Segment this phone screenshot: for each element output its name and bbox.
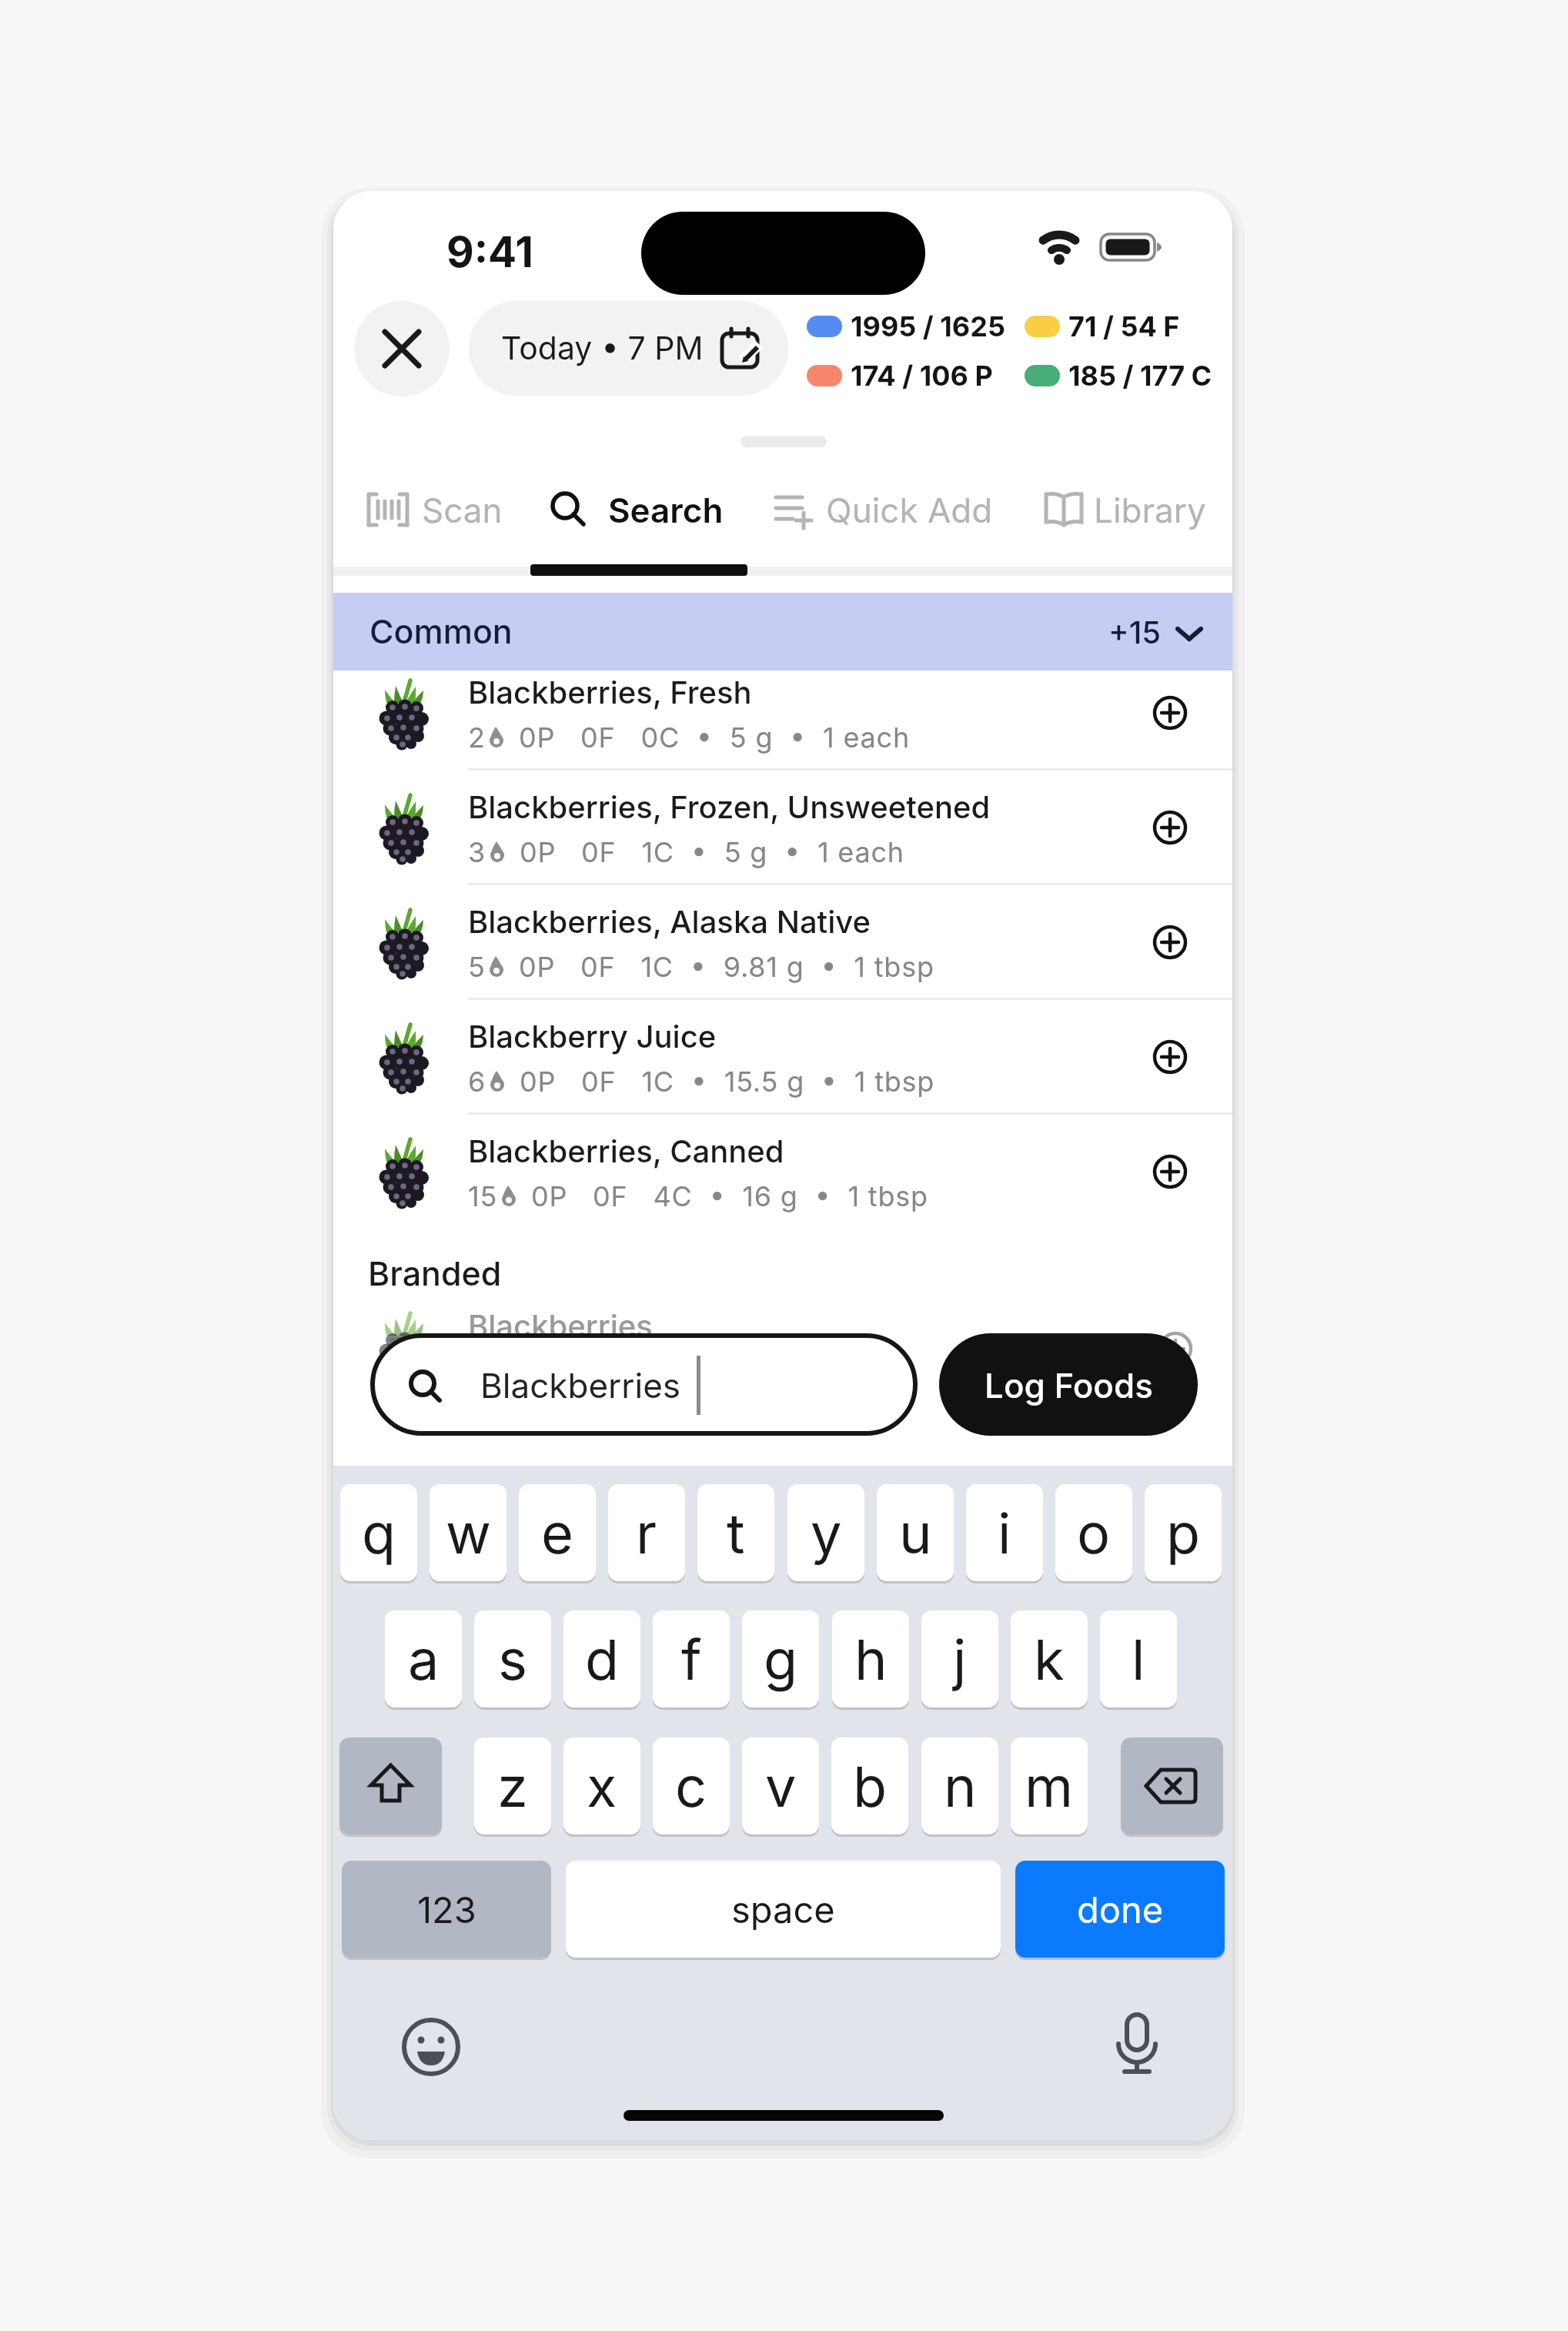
button[interactable]: a xyxy=(385,1610,462,1707)
button[interactable] xyxy=(333,1129,1232,1244)
button[interactable]: g xyxy=(742,1610,819,1707)
staticText: Blackberries, Canned xyxy=(468,1132,784,1169)
button[interactable] xyxy=(469,301,788,396)
button[interactable]: i xyxy=(966,1484,1043,1581)
staticText: h xyxy=(854,1626,888,1693)
staticText: f xyxy=(681,1626,702,1693)
staticText: Blackberry Juice xyxy=(468,1018,717,1055)
button[interactable]: 123 xyxy=(342,1861,551,1958)
staticText: z xyxy=(497,1753,528,1820)
staticText: Blackberries, Fresh xyxy=(468,674,752,711)
staticText: p xyxy=(1166,1500,1201,1567)
button[interactable] xyxy=(333,593,1232,671)
button[interactable] xyxy=(333,1015,1232,1129)
staticText: 15 xyxy=(468,1179,498,1213)
button[interactable]: k xyxy=(1011,1610,1088,1707)
button[interactable]: done xyxy=(1015,1861,1225,1958)
staticText: done xyxy=(1077,1888,1164,1931)
button[interactable]: c xyxy=(653,1737,730,1834)
staticText: 6 xyxy=(468,1065,486,1099)
staticText: Library xyxy=(1094,490,1206,530)
button[interactable] xyxy=(1150,1037,1190,1077)
button[interactable]: p xyxy=(1145,1484,1222,1581)
button[interactable] xyxy=(1150,922,1190,962)
button[interactable]: t xyxy=(697,1484,774,1581)
button[interactable] xyxy=(1150,808,1190,848)
staticText: 3 xyxy=(468,835,486,869)
button[interactable] xyxy=(541,476,734,545)
button[interactable]: z xyxy=(474,1737,551,1834)
staticText: 174 / 106 P xyxy=(851,359,993,393)
staticText: k xyxy=(1034,1626,1065,1693)
button[interactable] xyxy=(764,476,995,545)
button[interactable]: m xyxy=(1011,1737,1088,1834)
staticText: 185 / 177 C xyxy=(1068,359,1212,393)
button[interactable]: s xyxy=(474,1610,551,1707)
staticText: 1995 / 1625 xyxy=(851,309,1005,343)
staticText: m xyxy=(1025,1753,1074,1820)
staticText: v xyxy=(765,1753,797,1820)
staticText: 0P 0F 1C • 5 g • 1 each xyxy=(520,835,904,869)
staticText: space xyxy=(731,1888,835,1931)
staticText: 0P 0F 0C • 5 g • 1 each xyxy=(519,721,910,754)
button[interactable]: v xyxy=(742,1737,819,1834)
staticText: q xyxy=(362,1500,396,1567)
staticText: 71 / 54 F xyxy=(1068,309,1180,343)
staticText: l xyxy=(1132,1626,1145,1693)
button[interactable]: o xyxy=(1055,1484,1132,1581)
staticText: 9:41 xyxy=(446,226,533,278)
button[interactable]: j xyxy=(921,1610,998,1707)
staticText: Scan xyxy=(422,490,503,530)
button[interactable] xyxy=(339,1737,442,1834)
staticText: Blackberries, Frozen, Unsweetened xyxy=(468,788,991,825)
button[interactable]: b xyxy=(831,1737,908,1834)
button[interactable]: u xyxy=(877,1484,954,1581)
button[interactable] xyxy=(1098,2007,1175,2084)
button[interactable]: h xyxy=(832,1610,909,1707)
button[interactable]: e xyxy=(519,1484,596,1581)
button[interactable]: y xyxy=(787,1484,864,1581)
staticText: 0P 0F 1C • 15.5 g • 1 tbsp xyxy=(520,1065,935,1099)
staticText: Blackberries, Alaska Native xyxy=(468,903,871,940)
button[interactable] xyxy=(354,301,450,396)
staticText: c xyxy=(675,1753,707,1820)
staticText: 2 xyxy=(468,721,486,754)
staticText: 0P 0F 1C • 9.81 g • 1 tbsp xyxy=(519,950,934,984)
staticText: j xyxy=(953,1626,967,1693)
staticText: u xyxy=(899,1500,932,1567)
staticText: d xyxy=(585,1626,620,1693)
staticText: r xyxy=(636,1500,657,1567)
button[interactable] xyxy=(1034,476,1226,545)
button[interactable] xyxy=(356,476,518,545)
button[interactable] xyxy=(333,900,1232,1015)
staticText: +15 xyxy=(1108,614,1162,650)
button[interactable]: f xyxy=(653,1610,730,1707)
staticText: b xyxy=(853,1753,888,1820)
button[interactable] xyxy=(1121,1737,1223,1834)
button[interactable] xyxy=(1150,693,1190,733)
button[interactable] xyxy=(1150,1152,1190,1192)
button[interactable] xyxy=(333,785,1232,900)
staticText: Log Foods xyxy=(985,1365,1153,1406)
staticText: Branded xyxy=(368,1253,502,1293)
staticText: s xyxy=(498,1626,528,1693)
button[interactable]: d xyxy=(563,1610,640,1707)
staticText: y xyxy=(811,1500,842,1567)
button[interactable]: space xyxy=(566,1861,1001,1958)
button[interactable] xyxy=(393,2008,470,2085)
button[interactable] xyxy=(370,1333,918,1436)
staticText: o xyxy=(1077,1500,1111,1567)
staticText: a xyxy=(408,1626,440,1693)
staticText: Common xyxy=(369,611,513,651)
button[interactable]: r xyxy=(608,1484,685,1581)
button[interactable]: n xyxy=(921,1737,998,1834)
button[interactable]: l xyxy=(1100,1610,1177,1707)
staticText: e xyxy=(541,1500,573,1567)
button[interactable] xyxy=(939,1333,1198,1436)
button[interactable]: q xyxy=(340,1484,417,1581)
button[interactable]: w xyxy=(430,1484,507,1581)
button[interactable] xyxy=(333,671,1232,785)
staticText: Blackberries xyxy=(480,1365,681,1406)
button[interactable]: x xyxy=(563,1737,640,1834)
staticText: Blackberries xyxy=(468,1307,653,1344)
